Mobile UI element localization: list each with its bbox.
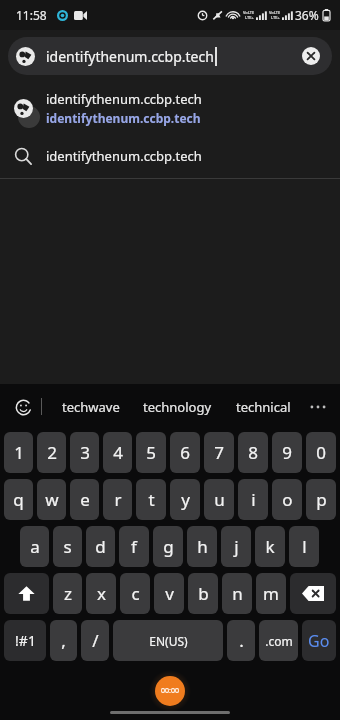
- staticText: k: [265, 535, 275, 558]
- button[interactable]: identifythenum.ccbp.tech: [8, 37, 332, 75]
- button[interactable]: Go: [302, 620, 336, 661]
- button[interactable]: d: [86, 526, 115, 567]
- staticText: /: [92, 629, 99, 652]
- staticText: e: [80, 488, 90, 511]
- staticText: c: [131, 582, 140, 605]
- button[interactable]: technology: [134, 384, 220, 429]
- staticText: n: [232, 582, 243, 605]
- staticText: VoLTE: [243, 10, 255, 15]
- button[interactable]: x: [86, 573, 116, 614]
- staticText: p: [316, 488, 327, 511]
- staticText: 00:00: [161, 686, 179, 696]
- button[interactable]: .: [227, 620, 255, 661]
- button[interactable]: y: [170, 479, 200, 520]
- button[interactable]: Recording timer: [155, 676, 185, 706]
- staticText: identifythenum.ccbp.tech: [46, 147, 202, 165]
- button[interactable]: 8: [238, 432, 268, 473]
- button[interactable]: h: [187, 526, 217, 567]
- button[interactable]: z: [53, 573, 82, 614]
- staticText: 11:58: [16, 7, 47, 23]
- button[interactable]: p: [306, 479, 336, 520]
- button[interactable]: 3: [70, 432, 99, 473]
- staticText: identifythenum.ccbp.tech: [46, 47, 214, 66]
- button[interactable]: e: [70, 479, 99, 520]
- button[interactable]: More suggestions: [306, 395, 330, 419]
- button[interactable]: /: [81, 620, 109, 661]
- button[interactable]: !#1: [4, 620, 46, 661]
- staticText: 6: [180, 441, 190, 464]
- staticText: q: [13, 488, 24, 511]
- button[interactable]: s: [53, 526, 82, 567]
- button[interactable]: t: [136, 479, 166, 520]
- staticText: m: [263, 582, 279, 605]
- button[interactable]: k: [255, 526, 285, 567]
- button[interactable]: j: [221, 526, 251, 567]
- button[interactable]: technical: [220, 384, 306, 429]
- staticText: .com: [265, 633, 293, 649]
- button[interactable]: m: [256, 573, 286, 614]
- button[interactable]: b: [188, 573, 218, 614]
- staticText: l: [302, 535, 307, 558]
- button[interactable]: u: [204, 479, 234, 520]
- button[interactable]: v: [154, 573, 184, 614]
- staticText: technical: [236, 398, 291, 416]
- button[interactable]: w: [37, 479, 66, 520]
- button[interactable]: g: [153, 526, 183, 567]
- staticText: 7: [214, 441, 224, 464]
- button[interactable]: n: [222, 573, 252, 614]
- button[interactable]: 0: [306, 432, 336, 473]
- button[interactable]: .com: [259, 620, 298, 661]
- button[interactable]: identifythenum.ccbp.tech: [0, 82, 340, 134]
- staticText: t: [148, 488, 155, 511]
- button[interactable]: 7: [204, 432, 234, 473]
- button[interactable]: 4: [103, 432, 132, 473]
- staticText: technology: [143, 398, 212, 416]
- button[interactable]: Shift: [4, 573, 49, 614]
- staticText: 8: [248, 441, 258, 464]
- staticText: ,: [61, 629, 66, 652]
- staticText: w: [45, 488, 59, 511]
- staticText: 36%: [295, 7, 319, 23]
- button[interactable]: i: [238, 479, 268, 520]
- staticText: x: [97, 582, 106, 605]
- staticText: g: [163, 535, 174, 558]
- staticText: identifythenum.ccbp.tech: [46, 90, 202, 108]
- staticText: VoLTE: [269, 10, 281, 15]
- staticText: v: [165, 582, 174, 605]
- button[interactable]: 2: [37, 432, 66, 473]
- staticText: d: [95, 535, 106, 558]
- staticText: LTE+: [245, 15, 254, 20]
- staticText: !#1: [15, 631, 36, 650]
- staticText: j: [234, 535, 239, 558]
- button[interactable]: r: [103, 479, 132, 520]
- button[interactable]: ,: [50, 620, 77, 661]
- staticText: 0: [316, 441, 326, 464]
- button[interactable]: l: [289, 526, 319, 567]
- button[interactable]: 5: [136, 432, 166, 473]
- button[interactable]: Emoji and voice: [10, 394, 36, 420]
- button[interactable]: Backspace: [290, 573, 336, 614]
- staticText: b: [198, 582, 209, 605]
- staticText: h: [197, 535, 208, 558]
- staticText: 9: [282, 441, 292, 464]
- button[interactable]: 6: [170, 432, 200, 473]
- staticText: LTE+: [271, 15, 280, 20]
- button[interactable]: 1: [4, 432, 33, 473]
- staticText: s: [63, 535, 72, 558]
- button[interactable]: f: [119, 526, 149, 567]
- button[interactable]: techwave: [47, 384, 134, 429]
- button[interactable]: Clear text: [298, 43, 324, 69]
- button[interactable]: identifythenum.ccbp.tech: [0, 134, 340, 178]
- button[interactable]: 9: [272, 432, 302, 473]
- button[interactable]: o: [272, 479, 302, 520]
- button[interactable]: c: [120, 573, 150, 614]
- staticText: 1: [14, 441, 24, 464]
- button[interactable]: q: [4, 479, 33, 520]
- button[interactable]: EN(US): [113, 620, 223, 661]
- staticText: Go: [308, 630, 330, 652]
- staticText: f: [131, 535, 137, 558]
- button[interactable]: a: [20, 526, 49, 567]
- staticText: EN(US): [149, 633, 188, 649]
- staticText: 4: [113, 441, 123, 464]
- staticText: r: [114, 488, 122, 511]
